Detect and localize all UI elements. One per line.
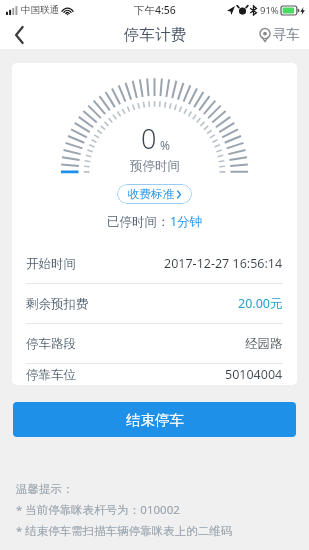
button[interactable]: 寻车	[259, 26, 300, 43]
staticText: %	[160, 137, 170, 153]
staticText: 中国联通	[21, 4, 59, 16]
staticText: 91%	[260, 4, 279, 17]
button[interactable]: Back	[0, 20, 38, 49]
button[interactable]: 结束停车	[13, 402, 296, 437]
staticText: 停靠车位	[26, 367, 76, 383]
staticText: 结束停车	[126, 411, 184, 429]
staticText: * 结束停车需扫描车辆停靠咪表上的二维码	[16, 523, 233, 539]
staticText: 50104004	[225, 366, 283, 383]
staticText: 开始时间	[26, 256, 76, 272]
staticText: 20.00元	[238, 295, 283, 312]
staticText: 停车计费	[124, 25, 186, 45]
staticText: 下午4:56	[134, 3, 176, 17]
staticText: 0	[141, 120, 157, 157]
button[interactable]: 开始时间	[12, 244, 297, 283]
staticText: 寻车	[273, 26, 300, 43]
button[interactable]: 停车路段	[12, 324, 297, 363]
staticText: 已停时间：	[107, 214, 170, 230]
staticText: 经园路	[245, 336, 283, 352]
staticText: * 当前停靠咪表杆号为：010002	[16, 502, 180, 518]
button[interactable]: 停靠车位	[12, 364, 297, 385]
button[interactable]: 剩余预扣费	[12, 284, 297, 323]
staticText: 剩余预扣费	[26, 296, 89, 312]
staticText: 收费标准	[128, 187, 174, 201]
button[interactable]: 收费标准	[117, 184, 192, 204]
staticText: 停车路段	[26, 336, 76, 352]
staticText: 2017-12-27 16:56:14	[164, 255, 283, 272]
staticText: 温馨提示：	[16, 482, 74, 496]
staticText: 1分钟	[170, 213, 203, 230]
staticText: 预停时间	[130, 158, 180, 174]
